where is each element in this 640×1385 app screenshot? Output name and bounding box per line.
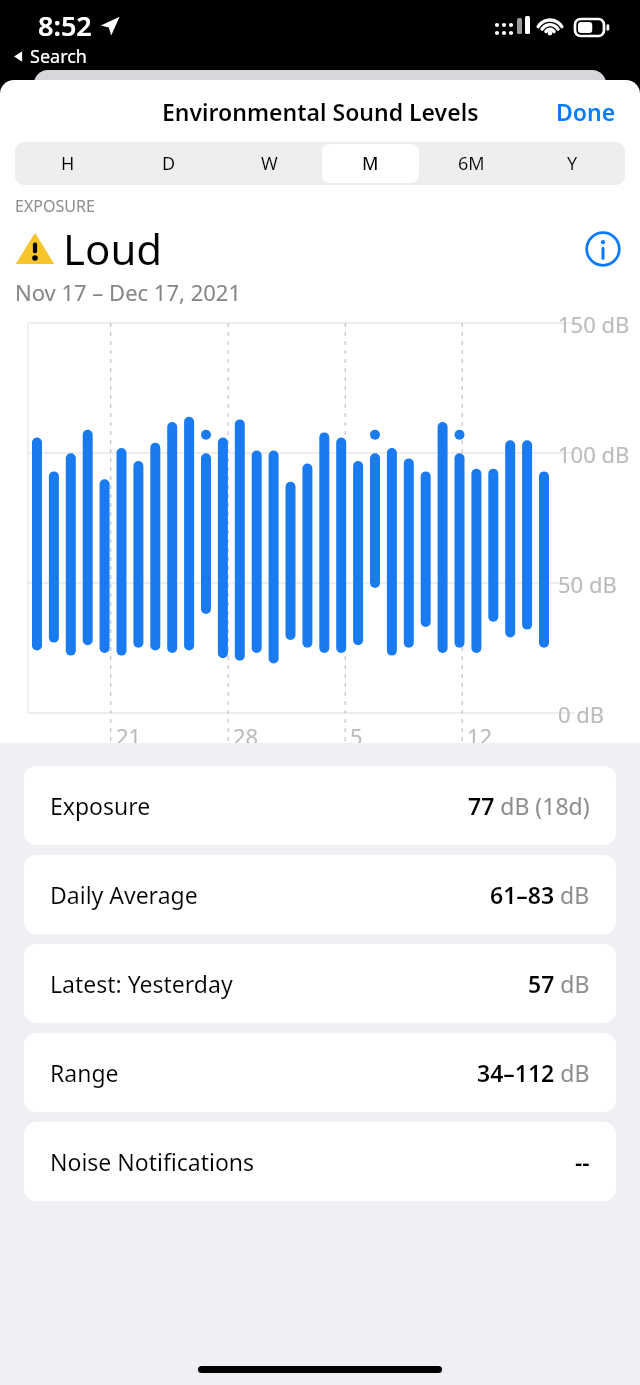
staticText: 34–112 dB: [477, 1057, 590, 1088]
staticText: 77 dB (18d): [468, 790, 590, 821]
staticText: Environmental Sound Levels: [162, 96, 479, 127]
button[interactable]: 6M: [423, 144, 520, 183]
staticText: M: [362, 151, 379, 176]
staticText: Done: [556, 96, 616, 127]
staticText: Loud: [63, 220, 163, 277]
staticText: --: [575, 1146, 590, 1177]
staticText: 21: [116, 721, 142, 751]
staticText: D: [162, 151, 176, 176]
staticText: 5: [350, 721, 363, 751]
staticText: 100 dB: [558, 439, 630, 469]
staticText: 57 dB: [528, 968, 590, 999]
staticText: Nov 17 – Dec 17, 2021: [15, 277, 241, 307]
staticText: Search: [30, 44, 87, 69]
button[interactable]: Done: [548, 88, 624, 135]
button[interactable]: Range: [24, 1033, 616, 1112]
button[interactable]: Y: [524, 144, 621, 183]
staticText: 6M: [458, 151, 485, 176]
staticText: 8:52: [38, 7, 92, 44]
button[interactable]: Latest: Yesterday: [24, 944, 616, 1023]
button[interactable]: M: [322, 144, 419, 183]
staticText: Y: [567, 151, 578, 176]
staticText: 0 dB: [558, 699, 605, 729]
staticText: 50 dB: [558, 569, 617, 599]
button[interactable]: Daily Average: [24, 855, 616, 934]
staticText: Latest: Yesterday: [50, 968, 233, 999]
staticText: Range: [50, 1057, 119, 1088]
button[interactable]: D: [120, 144, 217, 183]
staticText: 28: [233, 721, 259, 751]
staticText: Exposure: [50, 790, 151, 821]
button[interactable]: W: [221, 144, 318, 183]
staticText: EXPOSURE: [15, 195, 95, 217]
staticText: W: [261, 151, 278, 176]
staticText: Noise Notifications: [50, 1146, 255, 1177]
staticText: 61–83 dB: [490, 879, 590, 910]
staticText: Daily Average: [50, 879, 198, 910]
staticText: 12: [467, 721, 493, 751]
button[interactable]: Exposure: [24, 766, 616, 845]
button[interactable]: H: [19, 144, 116, 183]
button[interactable]: Search: [8, 40, 91, 73]
staticText: 150 dB: [558, 309, 630, 339]
button[interactable]: Noise Notifications: [24, 1122, 616, 1201]
staticText: H: [61, 151, 75, 176]
button[interactable]: More information: [581, 227, 625, 271]
